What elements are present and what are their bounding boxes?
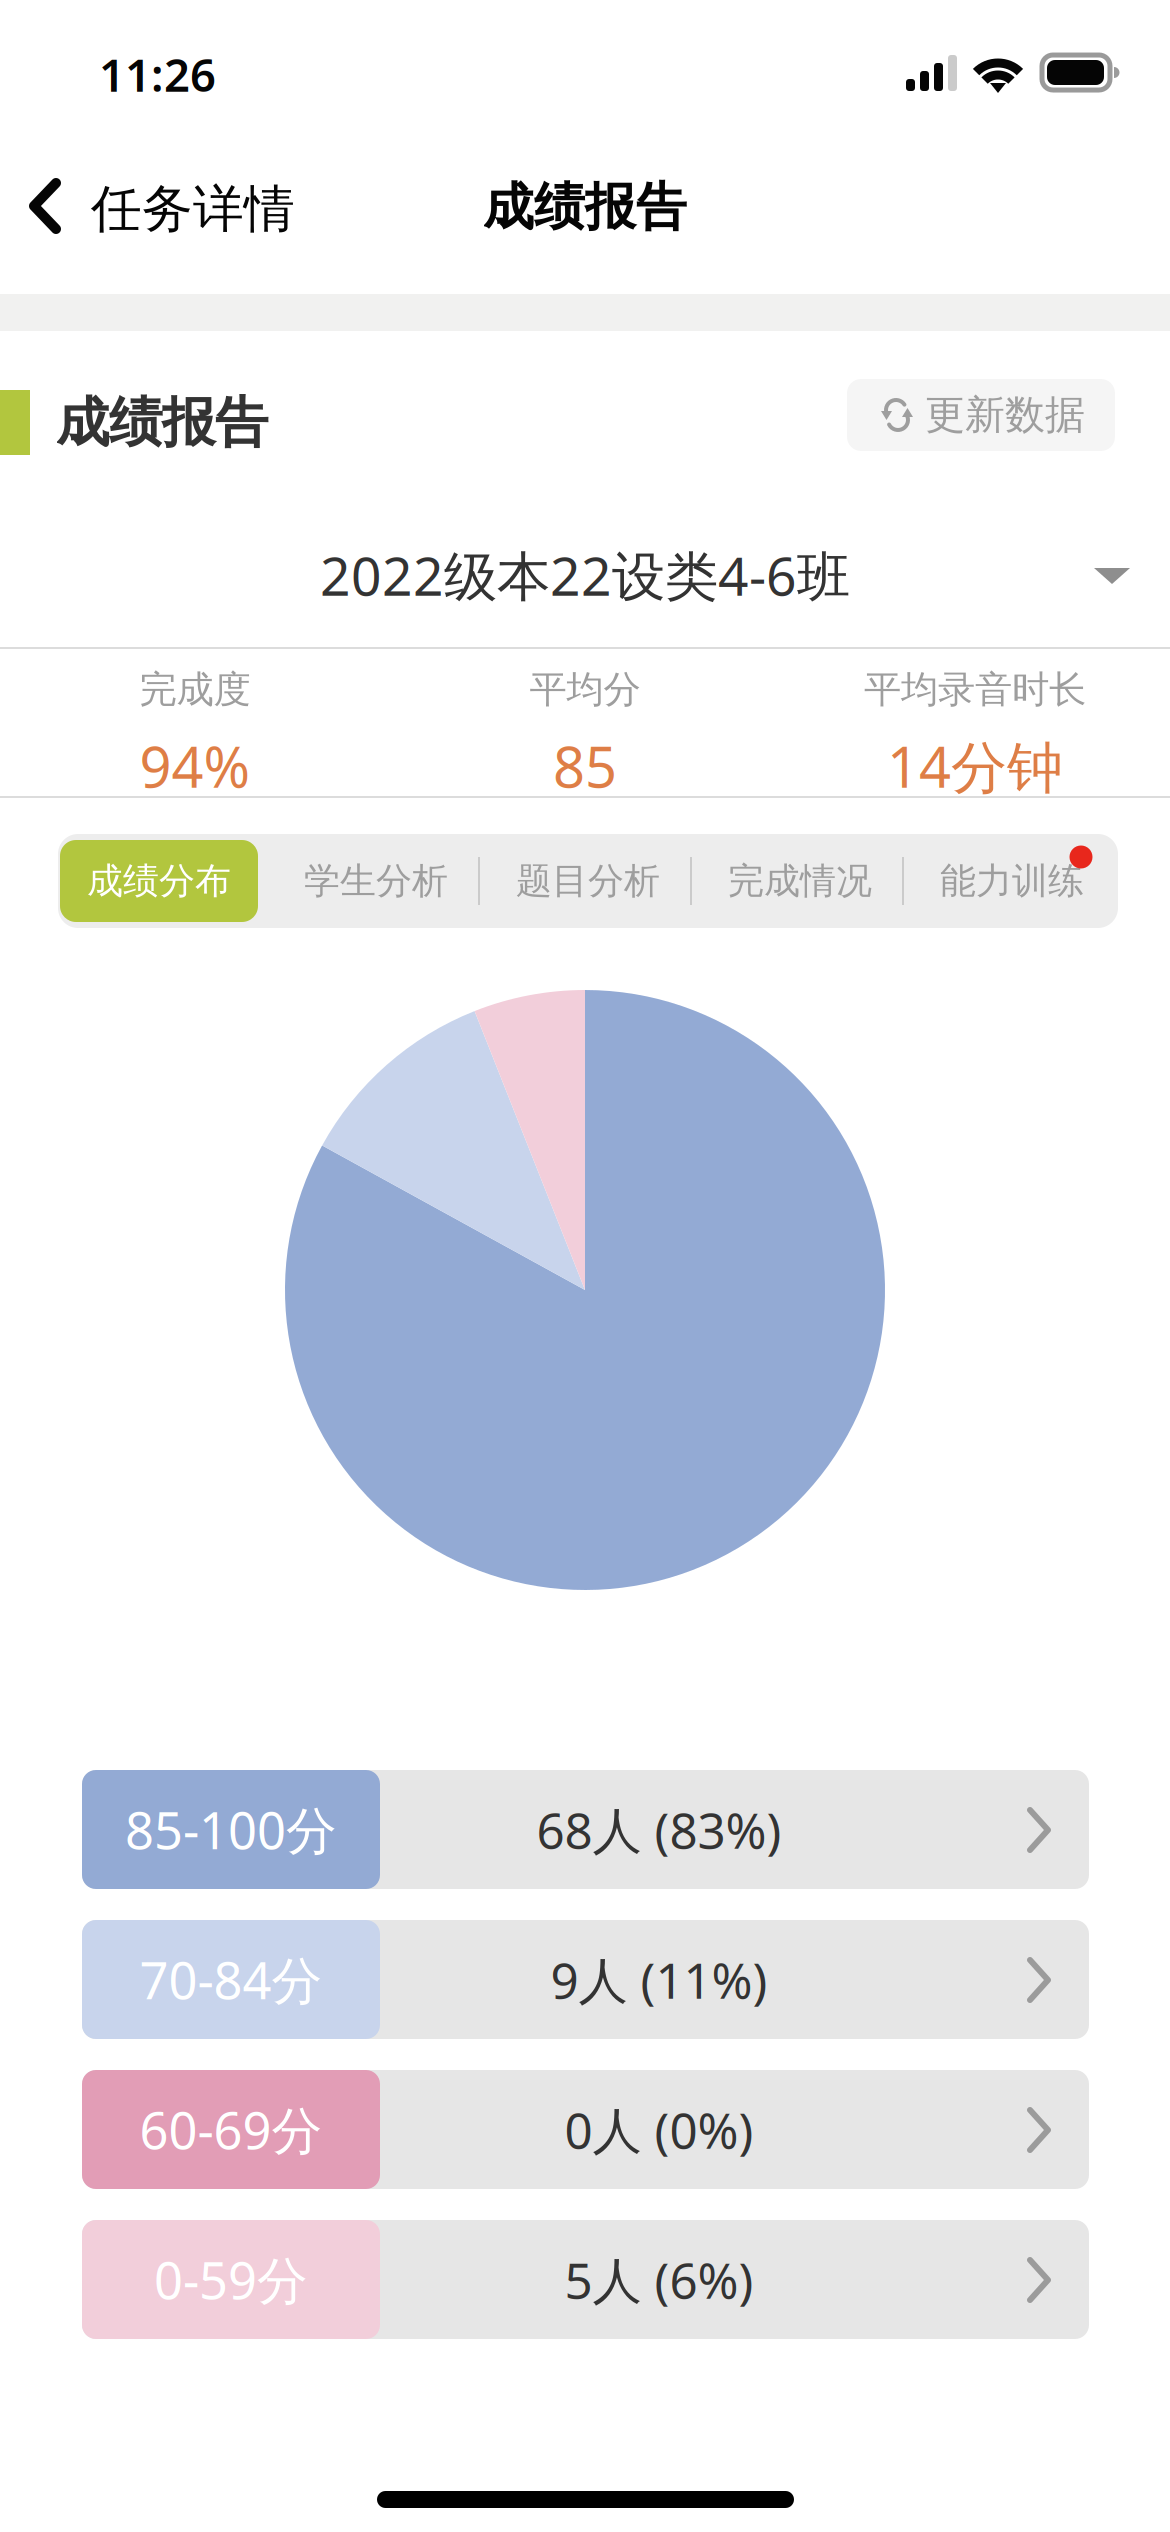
staticText: 11:26 bbox=[99, 44, 216, 104]
button[interactable]: 2022级本22设类4-6班 bbox=[0, 532, 1170, 618]
staticText: 成绩分布 bbox=[87, 859, 231, 903]
staticText: 能力训练 bbox=[940, 859, 1084, 903]
button[interactable]: 0-59分 bbox=[82, 2220, 1089, 2339]
staticText: 70-84分 bbox=[139, 1946, 322, 2013]
staticText: 完成度 bbox=[139, 667, 250, 712]
button[interactable]: 题目分析 bbox=[482, 834, 694, 928]
button[interactable]: 能力训练 bbox=[906, 834, 1118, 928]
staticText: 成绩报告 bbox=[483, 176, 687, 238]
staticText: 成绩报告 bbox=[56, 390, 268, 455]
button[interactable]: 学生分析 bbox=[270, 834, 482, 928]
staticText: 60-69分 bbox=[139, 2096, 322, 2163]
staticText: 题目分析 bbox=[516, 859, 660, 903]
staticText: 85-100分 bbox=[125, 1796, 337, 1863]
staticText: 5人 (6%) bbox=[564, 2247, 753, 2312]
staticText: 68人 (83%) bbox=[536, 1797, 781, 1862]
staticText: 14分钟 bbox=[887, 729, 1063, 803]
button[interactable]: 更新数据 bbox=[847, 379, 1115, 451]
button[interactable]: 任务详情 bbox=[20, 160, 310, 252]
staticText: 85 bbox=[553, 729, 617, 803]
staticText: 任务详情 bbox=[91, 178, 295, 240]
staticText: 完成情况 bbox=[728, 859, 872, 903]
staticText: 学生分析 bbox=[304, 859, 448, 903]
button[interactable]: 完成情况 bbox=[694, 834, 906, 928]
staticText: 平均录音时长 bbox=[864, 667, 1086, 712]
staticText: 0-59分 bbox=[154, 2246, 308, 2313]
staticText: 平均分 bbox=[529, 667, 640, 712]
button[interactable]: 85-100分 bbox=[82, 1770, 1089, 1889]
staticText: 9人 (11%) bbox=[550, 1947, 767, 2012]
button[interactable]: 成绩分布 bbox=[58, 834, 270, 928]
button[interactable]: 60-69分 bbox=[82, 2070, 1089, 2189]
staticText: 0人 (0%) bbox=[564, 2097, 753, 2162]
staticText: 94% bbox=[139, 729, 250, 803]
staticText: 更新数据 bbox=[925, 390, 1085, 439]
staticText: 2022级本22设类4-6班 bbox=[320, 540, 850, 610]
button[interactable]: 70-84分 bbox=[82, 1920, 1089, 2039]
